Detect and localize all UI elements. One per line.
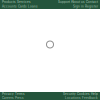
staticText: Register: [85, 5, 98, 8]
staticText: Accounts: [2, 5, 17, 8]
staticText: Locations: [65, 96, 81, 100]
staticText: Security: [63, 92, 76, 96]
staticText: Sign in: [73, 5, 84, 8]
staticText: Loans: [28, 5, 38, 8]
staticText: Careers: [2, 96, 14, 100]
staticText: Privacy: [2, 92, 14, 96]
staticText: Feedback: [82, 96, 98, 100]
staticText: Press: [15, 96, 24, 100]
staticText: Support: [58, 0, 70, 4]
staticText: Cookies: [77, 92, 90, 96]
staticText: Contact: [86, 0, 98, 4]
staticText: Terms: [15, 92, 25, 96]
staticText: Services: [17, 0, 31, 4]
staticText: Help: [91, 92, 98, 96]
staticText: Products: [2, 0, 16, 4]
staticText: Cards: [18, 5, 27, 8]
staticText: About us: [71, 0, 85, 4]
